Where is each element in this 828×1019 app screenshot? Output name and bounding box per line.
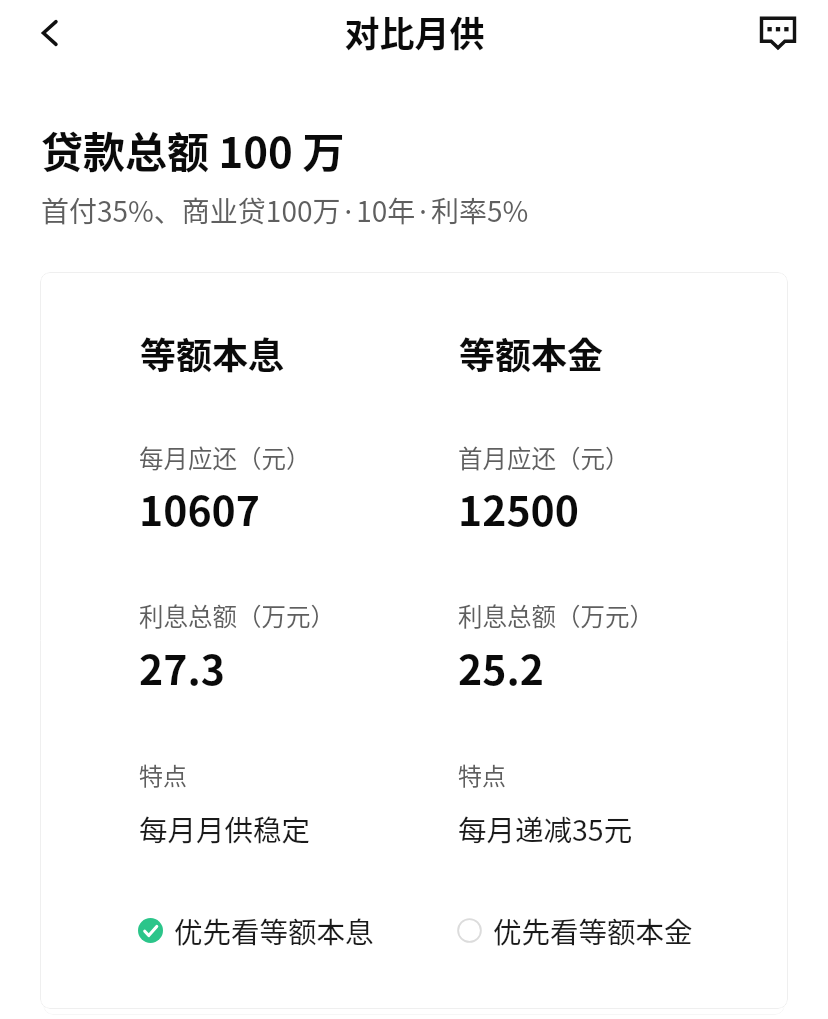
staticText: 27.3 [139, 637, 225, 696]
staticText: 10607 [139, 478, 260, 537]
button[interactable]: 优先看等额本息 [138, 910, 374, 950]
staticText: 等额本金 [459, 327, 604, 379]
staticText: 每月月供稳定 [139, 808, 311, 849]
staticText: 12500 [458, 478, 579, 537]
button[interactable]: 优先看等额本金 [457, 910, 693, 950]
button[interactable]: Back [0, 0, 100, 66]
staticText: 利息总额（万元） [458, 598, 654, 633]
staticText: 优先看等额本息 [174, 910, 374, 950]
button[interactable]: Feedback [728, 0, 828, 66]
staticText: 利息总额（万元） [139, 598, 335, 633]
staticText: 首付35%、商业贷100万·10年·利率5% [41, 190, 529, 231]
staticText: 每月递减35元 [458, 808, 633, 849]
staticText: 等额本息 [140, 327, 285, 379]
staticText: 首月应还（元） [458, 440, 630, 475]
staticText: 对比月供 [344, 6, 485, 57]
staticText: 特点 [139, 757, 187, 792]
staticText: 25.2 [458, 637, 544, 696]
staticText: 特点 [458, 757, 506, 792]
staticText: 每月应还（元） [139, 440, 311, 475]
staticText: 贷款总额 100 万 [41, 119, 345, 180]
staticText: 优先看等额本金 [493, 910, 693, 950]
